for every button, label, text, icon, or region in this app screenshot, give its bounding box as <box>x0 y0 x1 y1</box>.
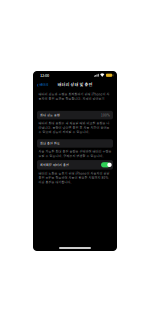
staticText: 12:00 <box>40 72 49 78</box>
button[interactable]: 최적화된 배터리 충전 <box>33 160 117 170</box>
staticText: 최적화된 배터리 충전 <box>40 163 69 167</box>
staticText: 배터리 성능과 수명을 최적화하기 위해 iPhone이 사용자의 충전 습관을… <box>38 92 109 101</box>
staticText: 배터리 노화를 늦추기 위해 iPhone이 사용자의 일일 충전 루틴을 학습… <box>38 171 109 184</box>
staticText: 배터리 <box>39 82 48 87</box>
staticText: ‹ <box>37 80 39 89</box>
staticText: 배터리 상태 및 충전 <box>57 81 92 87</box>
staticText: 배터리 최대 용량은 새 제품일 때와 비교한 용량을 나타냅니다. 용량이 낮… <box>38 121 109 134</box>
staticText: 최대 충전 한도 <box>40 141 60 146</box>
staticText: 최대 성능 용량 <box>40 113 60 117</box>
button[interactable]: ‹ <box>36 80 49 89</box>
staticText: 사용 가능한 최대 충전 용량을 선택하여 배터리 수명을 늘릴 수 있습니다.… <box>38 149 111 158</box>
staticText: 100% <box>101 113 110 117</box>
